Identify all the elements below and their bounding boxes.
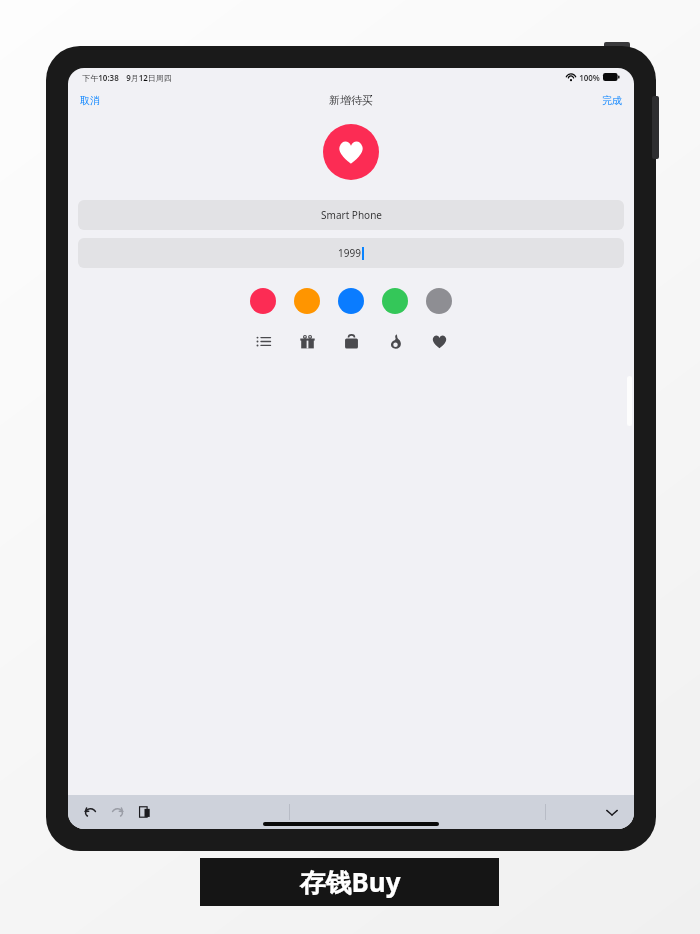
staticText: 100% [579, 72, 600, 83]
staticText: Smart Phone [321, 208, 382, 222]
button[interactable]: Colour option [294, 288, 320, 314]
staticText: 9月12日周四 [126, 72, 172, 83]
button[interactable]: Gift [297, 331, 317, 351]
button[interactable]: Heart [429, 331, 449, 351]
button[interactable]: Change icon [323, 124, 379, 180]
button[interactable]: Colour option [250, 288, 276, 314]
button[interactable]: Paste [134, 802, 154, 822]
button[interactable]: 取消 [74, 90, 106, 111]
button[interactable]: Bag [341, 331, 361, 351]
staticText: 下午10:38 [82, 72, 119, 83]
staticText: 完成 [602, 94, 622, 107]
button[interactable]: 完成 [596, 90, 628, 111]
button[interactable]: Colour option [382, 288, 408, 314]
button[interactable]: Flame [385, 331, 405, 351]
staticText: 取消 [80, 94, 100, 107]
button[interactable]: Hide keyboard [602, 802, 622, 822]
staticText: 存钱Buy [299, 864, 401, 900]
button[interactable]: Redo [107, 802, 127, 822]
button[interactable]: List [253, 331, 273, 351]
button[interactable]: Colour option [426, 288, 452, 314]
button[interactable]: 1999 [78, 238, 624, 268]
staticText: 新增待买 [329, 93, 373, 107]
button[interactable]: Undo [80, 802, 100, 822]
button[interactable]: Smart Phone [78, 200, 624, 230]
staticText: 1999 [338, 246, 361, 260]
button[interactable]: Colour option [338, 288, 364, 314]
